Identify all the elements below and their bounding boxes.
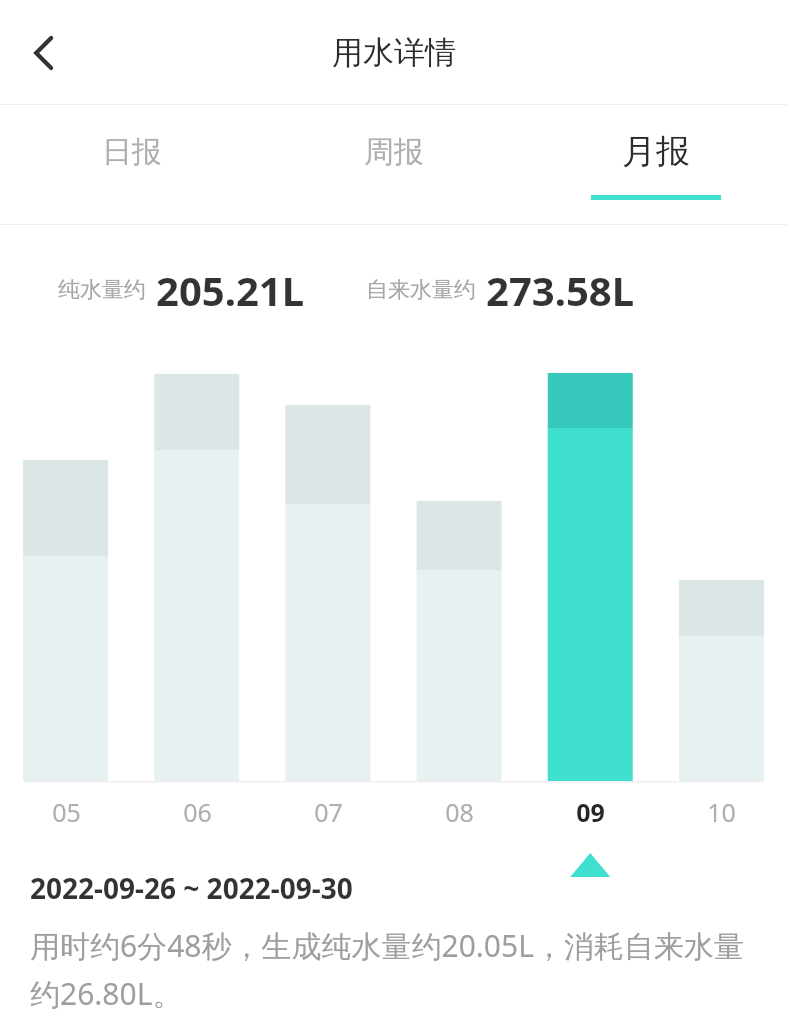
staticText: 08 bbox=[445, 795, 474, 829]
button[interactable]: 07 bbox=[263, 795, 394, 829]
staticText: 205.21L bbox=[156, 263, 304, 317]
staticText: 用水详情 bbox=[332, 33, 456, 72]
staticText: 日报 bbox=[102, 133, 162, 171]
staticText: 06 bbox=[183, 795, 212, 829]
staticText: 05 bbox=[52, 795, 81, 829]
button[interactable]: 10 bbox=[656, 795, 787, 829]
staticText: 纯水量约 bbox=[58, 276, 146, 304]
staticText: 月报 bbox=[622, 130, 690, 173]
button[interactable]: 周报 bbox=[263, 105, 525, 225]
staticText: 周报 bbox=[364, 133, 424, 171]
button[interactable]: 05 bbox=[0, 795, 132, 829]
button[interactable]: 09 bbox=[525, 795, 656, 829]
staticText: 自来水量约 bbox=[366, 276, 476, 304]
staticText: 07 bbox=[314, 795, 343, 829]
staticText: 10 bbox=[707, 795, 736, 829]
button[interactable]: Back bbox=[14, 22, 76, 84]
button[interactable]: 08 bbox=[394, 795, 525, 829]
button[interactable]: 日报 bbox=[0, 105, 263, 225]
button[interactable]: 月报 bbox=[525, 105, 787, 225]
staticText: 273.58L bbox=[486, 263, 634, 317]
button[interactable]: 06 bbox=[132, 795, 263, 829]
staticText: 用时约6分48秒，生成纯水量约20.05L，消耗自来水量约26.80L。 bbox=[30, 925, 765, 1014]
staticText: 09 bbox=[576, 795, 605, 829]
staticText: 2022-09-26 ~ 2022-09-30 bbox=[30, 869, 353, 907]
